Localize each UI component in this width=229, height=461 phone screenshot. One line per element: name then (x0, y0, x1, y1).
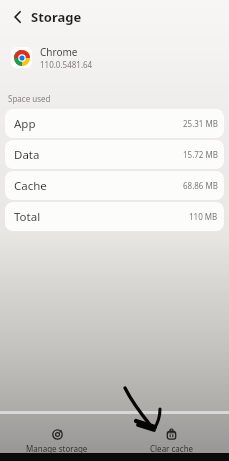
staticText: Clear cache (150, 443, 194, 453)
staticText: Chrome (40, 45, 78, 59)
staticText: Manage storage (26, 443, 88, 453)
button[interactable]: App (5, 109, 224, 138)
staticText: 15.72 MB (183, 149, 218, 160)
staticText: Storage (31, 8, 82, 26)
button[interactable]: Chrome (11, 45, 229, 70)
staticText: Space used (8, 93, 51, 104)
staticText: Cache (14, 178, 47, 194)
staticText: 110 MB (189, 211, 218, 222)
staticText: 25.31 MB (183, 118, 218, 129)
button[interactable]: Cache (5, 171, 224, 200)
button[interactable]: Total (5, 202, 224, 231)
button[interactable]: Manage storage (0, 414, 114, 453)
staticText: Data (14, 147, 40, 163)
button[interactable]: Data (5, 140, 224, 169)
staticText: App (14, 116, 36, 132)
button[interactable]: Clear cache (114, 414, 229, 453)
staticText: 68.86 MB (183, 180, 218, 191)
button[interactable] (8, 7, 28, 27)
staticText: 110.0.5481.64 (40, 59, 93, 70)
staticText: Total (14, 209, 41, 225)
